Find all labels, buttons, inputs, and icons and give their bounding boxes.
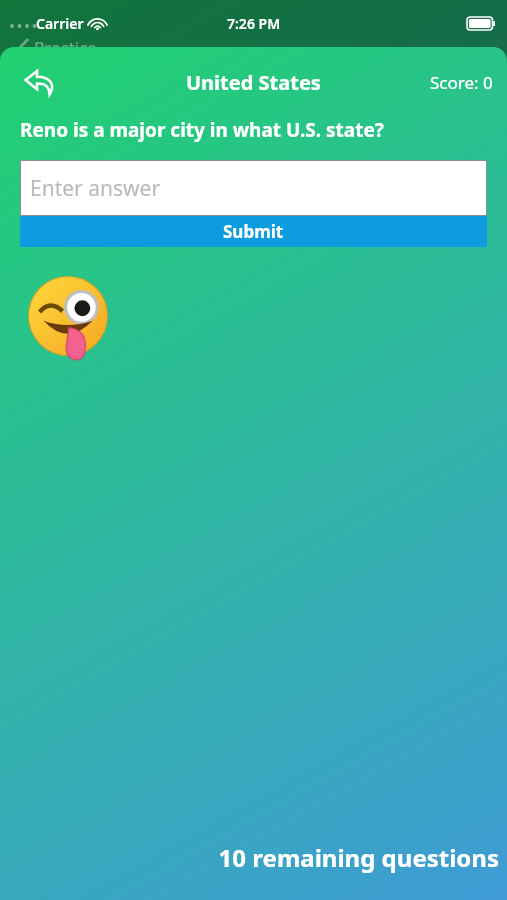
- staticText: Carrier: [36, 14, 84, 33]
- staticText: Score: 0: [430, 71, 493, 94]
- staticText: Practice: [34, 36, 97, 59]
- button[interactable]: Submit: [20, 216, 487, 247]
- staticText: 7:26 PM: [227, 14, 281, 33]
- button[interactable]: Back: [14, 56, 66, 108]
- staticText: 10 remaining questions: [0, 841, 499, 874]
- staticText: Enter answer: [30, 174, 161, 203]
- button[interactable]: Enter answer: [20, 160, 487, 216]
- staticText: United States: [186, 69, 321, 96]
- staticText: Submit: [223, 220, 284, 243]
- staticText: Reno is a major city in what U.S. state?: [20, 117, 384, 143]
